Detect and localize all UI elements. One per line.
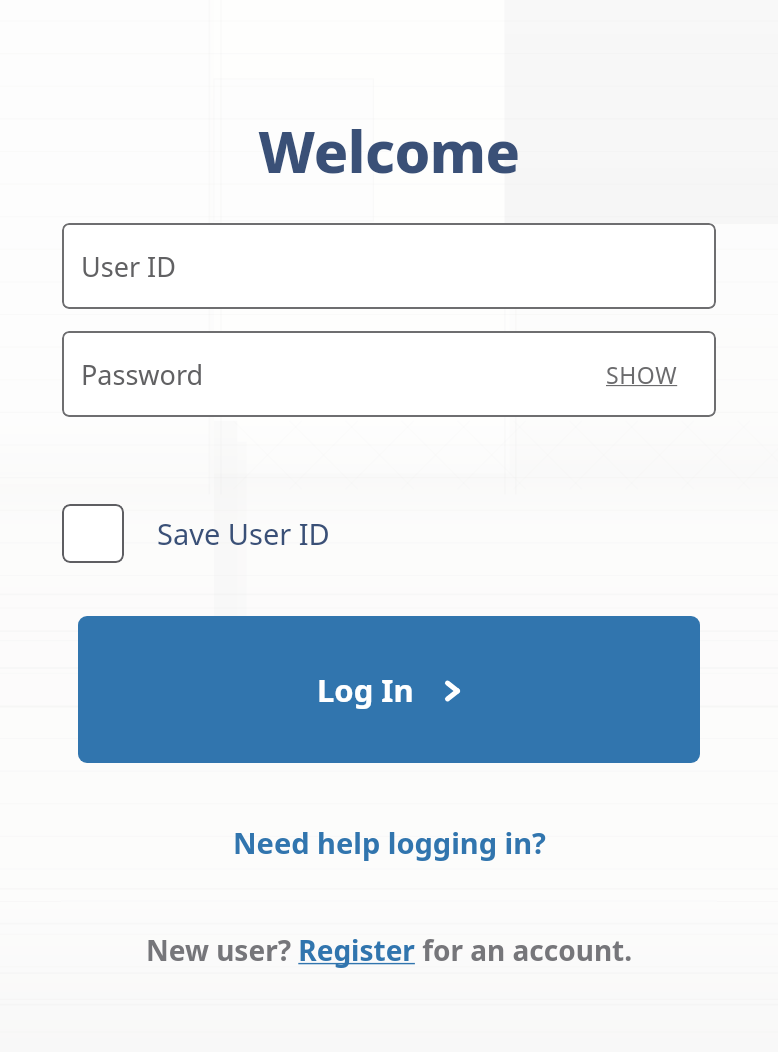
staticText: Password: [81, 356, 204, 393]
staticText: New user? Register for an account.: [146, 931, 633, 969]
button[interactable]: SHOW: [606, 359, 678, 390]
staticText: Save User ID: [157, 514, 330, 553]
button[interactable]: New user? Register for an account.: [0, 931, 778, 969]
staticText: Log In: [317, 669, 414, 711]
staticText: Welcome: [0, 112, 778, 190]
staticText: SHOW: [606, 359, 678, 390]
button[interactable]: Log In: [78, 616, 700, 763]
button[interactable]: User ID: [62, 223, 716, 309]
button[interactable]: Save User ID: [62, 504, 330, 563]
staticText: User ID: [81, 248, 176, 285]
staticText: Need help logging in?: [233, 823, 546, 862]
button[interactable]: Need help logging in?: [0, 823, 778, 862]
button[interactable]: Password: [62, 331, 716, 417]
